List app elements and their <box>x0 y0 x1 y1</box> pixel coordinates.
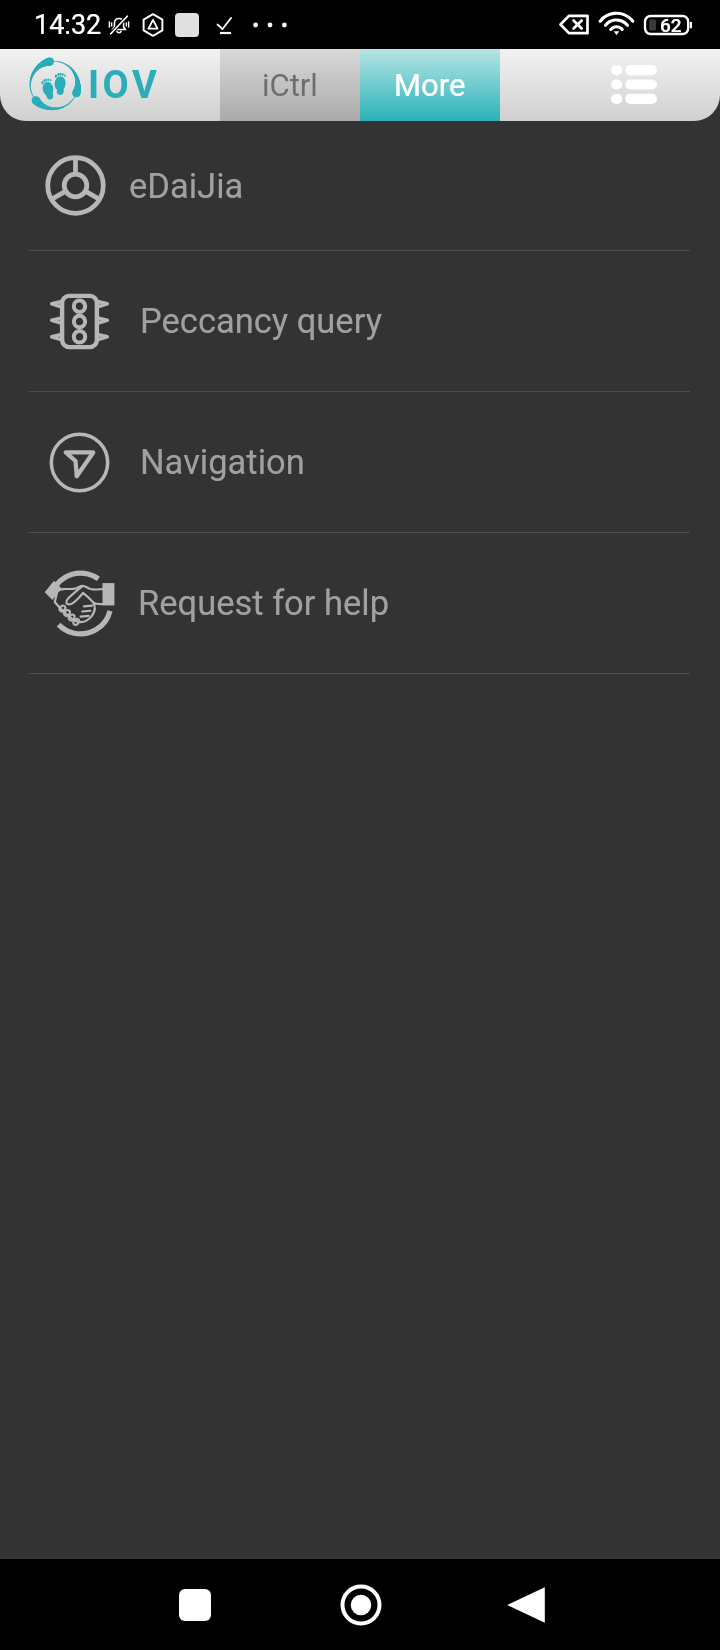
staticText: iCtrl <box>262 67 318 103</box>
button[interactable]: Request for help <box>0 533 720 674</box>
staticText: IOV <box>88 63 161 108</box>
staticText: 62 <box>660 14 682 36</box>
staticText: eDaiJia <box>129 166 244 206</box>
button[interactable]: Recent apps <box>165 1575 225 1635</box>
button[interactable]: Peccancy query <box>0 251 720 392</box>
button[interactable]: Navigation <box>0 392 720 533</box>
staticText: 14:32 <box>34 9 102 41</box>
button[interactable]: iCtrl <box>220 49 360 121</box>
staticText: More <box>394 67 466 103</box>
button[interactable]: IOV <box>0 49 220 121</box>
button[interactable]: Home <box>331 1575 391 1635</box>
staticText: Request for help <box>138 583 390 623</box>
button[interactable]: Back <box>496 1575 556 1635</box>
staticText: Navigation <box>140 442 305 482</box>
staticText: Peccancy query <box>140 301 382 341</box>
button[interactable]: More <box>360 49 500 121</box>
button[interactable]: Menu <box>500 49 720 121</box>
button[interactable]: eDaiJia <box>0 121 720 251</box>
